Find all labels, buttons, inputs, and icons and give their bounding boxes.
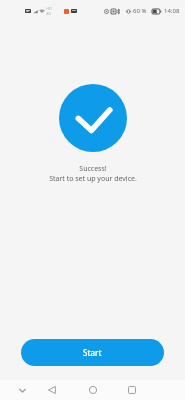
staticText: 14:08 (164, 7, 180, 15)
staticText: Start to set up your device. (49, 174, 137, 184)
staticText: 60 % (133, 7, 147, 15)
staticText: HD (46, 6, 52, 11)
staticText: Success! (79, 164, 107, 174)
button[interactable]: Recents (121, 380, 143, 400)
staticText: Start (83, 347, 102, 358)
button[interactable]: Home (82, 380, 104, 400)
staticText: 4G (46, 11, 52, 16)
button[interactable]: Start (21, 339, 164, 366)
button[interactable]: Hide keyboard (11, 380, 33, 400)
button[interactable]: Back (41, 380, 63, 400)
